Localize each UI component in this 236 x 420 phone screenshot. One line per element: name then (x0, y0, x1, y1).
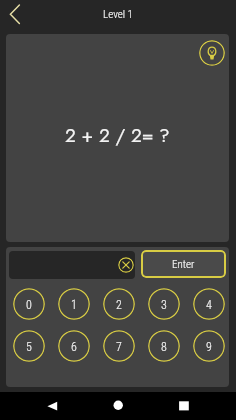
button[interactable]: 4 (193, 288, 225, 320)
button[interactable]: 2 (103, 288, 135, 320)
button[interactable]: Recent apps (166, 392, 203, 420)
staticText: 2 + 2 / 2= ? (65, 122, 170, 149)
staticText: 3 (161, 298, 167, 312)
button[interactable]: Hint (199, 40, 225, 66)
staticText: 5 (26, 340, 32, 354)
button[interactable]: Home (100, 392, 137, 420)
staticText: 0 (26, 298, 32, 312)
button[interactable]: Back (34, 392, 71, 420)
button[interactable]: 0 (13, 288, 45, 320)
button[interactable]: 1 (58, 288, 90, 320)
staticText: 8 (161, 340, 167, 354)
button[interactable]: 5 (13, 330, 45, 362)
staticText: Enter (172, 258, 195, 271)
staticText: Level 1 (0, 8, 236, 21)
staticText: 9 (206, 340, 212, 354)
button[interactable]: Back (3, 1, 29, 27)
button[interactable]: Clear (118, 257, 134, 273)
staticText: 6 (71, 340, 77, 354)
button[interactable]: 9 (193, 330, 225, 362)
button[interactable]: 3 (148, 288, 180, 320)
button[interactable]: 8 (148, 330, 180, 362)
button[interactable]: 7 (103, 330, 135, 362)
staticText: 1 (71, 298, 77, 312)
button[interactable]: Enter (141, 250, 226, 278)
button[interactable] (9, 251, 135, 279)
button[interactable]: 6 (58, 330, 90, 362)
staticText: 4 (206, 298, 212, 312)
staticText: 2 (116, 298, 122, 312)
staticText: 7 (116, 340, 122, 354)
